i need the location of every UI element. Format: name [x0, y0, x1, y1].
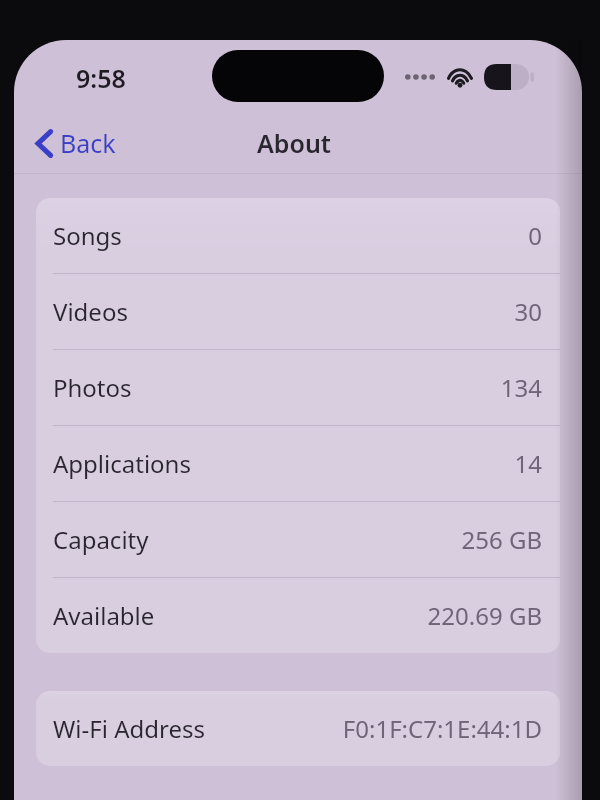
- staticText: 0: [528, 219, 542, 252]
- staticText: Capacity: [53, 523, 149, 556]
- button[interactable]: Capacity: [36, 502, 560, 577]
- staticText: 14: [514, 447, 542, 480]
- staticText: Videos: [53, 295, 128, 328]
- other: Battery 60 percent: [484, 64, 534, 90]
- staticText: Available: [53, 599, 155, 632]
- staticText: 220.69 GB: [427, 599, 542, 632]
- staticText: F0:1F:C7:1E:44:1D: [342, 712, 542, 745]
- button[interactable]: Videos: [36, 274, 560, 349]
- button[interactable]: Available: [36, 578, 560, 653]
- staticText: 134: [500, 371, 542, 404]
- button[interactable]: Back: [28, 120, 124, 166]
- button[interactable]: Applications: [36, 426, 560, 501]
- staticText: Wi-Fi Address: [53, 712, 205, 745]
- staticText: Back: [60, 126, 116, 160]
- staticText: Photos: [53, 371, 132, 404]
- staticText: 30: [514, 295, 542, 328]
- staticText: Songs: [53, 219, 122, 252]
- staticText: 256 GB: [461, 523, 542, 556]
- staticText: Applications: [53, 447, 191, 480]
- button[interactable]: Songs: [36, 198, 560, 273]
- staticText: About: [257, 126, 331, 160]
- staticText: 9:58: [76, 61, 126, 95]
- button[interactable]: Photos: [36, 350, 560, 425]
- button[interactable]: Wi-Fi Address: [36, 691, 560, 766]
